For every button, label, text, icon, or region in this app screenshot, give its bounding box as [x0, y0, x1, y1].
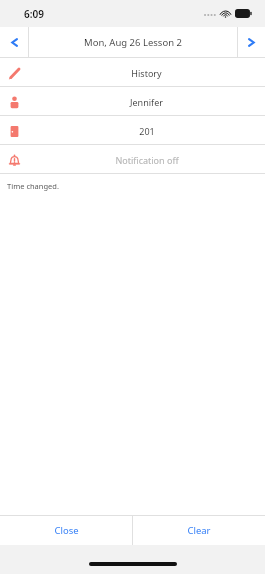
button[interactable]: Mon, Aug 26 Lesson 2 [29, 27, 237, 58]
button[interactable]: Jennifer [0, 87, 265, 116]
staticText: Notification off [115, 154, 179, 166]
staticText: Clear [187, 524, 211, 537]
button[interactable]: Previous [0, 27, 28, 58]
button[interactable]: Clear [133, 516, 265, 545]
button[interactable]: Notification off [0, 145, 265, 174]
staticText: 6:09 [24, 7, 44, 21]
button[interactable]: Close [0, 516, 132, 545]
staticText: Time changed. [7, 181, 59, 191]
staticText: Mon, Aug 26 Lesson 2 [84, 36, 182, 49]
staticText: History [131, 67, 162, 79]
button[interactable]: History [0, 58, 265, 87]
staticText: Close [54, 524, 79, 537]
staticText: 201 [139, 125, 155, 137]
button[interactable]: 201 [0, 116, 265, 145]
button[interactable]: Next [238, 27, 265, 58]
staticText: Jennifer [130, 96, 163, 108]
